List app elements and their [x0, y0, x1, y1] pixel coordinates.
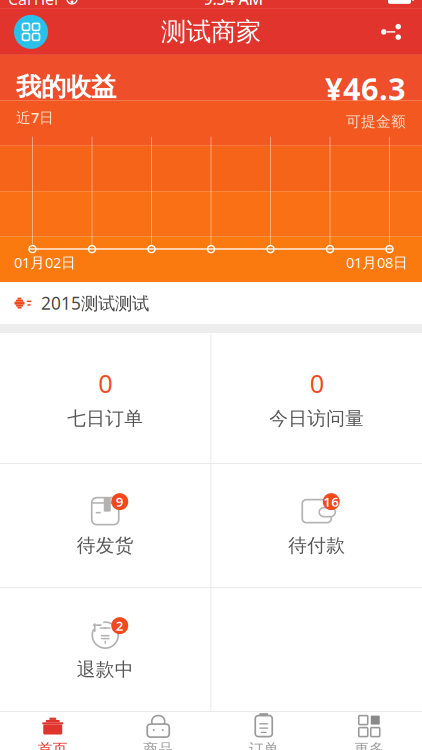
button[interactable]: Share [364, 9, 418, 55]
staticText: 退款中 [77, 658, 134, 681]
staticText: 待付款 [288, 534, 345, 557]
staticText: 0 [98, 366, 112, 400]
button[interactable]: 2 [0, 588, 210, 711]
button[interactable]: 首页 [0, 712, 105, 750]
staticText: 七日订单 [67, 407, 143, 430]
staticText: 0 [310, 366, 324, 400]
staticText: 商品 [143, 740, 173, 750]
button[interactable]: 0 [211, 333, 422, 463]
staticText: 16 [323, 493, 339, 510]
button[interactable]: 更多 [316, 712, 422, 750]
button[interactable]: 2015测试测试 [0, 282, 422, 324]
staticText: 待发货 [77, 534, 134, 557]
staticText: ¥46.3 [325, 68, 406, 109]
staticText: 测试商家 [161, 16, 261, 47]
button[interactable]: Scan code [4, 9, 58, 55]
staticText: 9:34 AM [203, 0, 263, 9]
staticText: 订单 [249, 740, 279, 750]
staticText: 我的收益 [16, 71, 116, 103]
staticText: 01月02日 [14, 253, 76, 272]
staticText: Carrier [8, 0, 61, 9]
button[interactable]: 0 [0, 333, 210, 463]
staticText: 2 [116, 617, 124, 634]
staticText: 01月08日 [346, 253, 408, 272]
staticText: 首页 [38, 740, 68, 750]
button[interactable]: 订单 [211, 712, 316, 750]
staticText: 近7日 [16, 108, 54, 127]
button[interactable]: 16 [211, 464, 422, 587]
staticText: 更多 [354, 740, 384, 750]
button[interactable]: 商品 [105, 712, 211, 750]
staticText: 9 [116, 493, 124, 510]
staticText: 今日访问量 [269, 407, 364, 430]
staticText: 可提金额 [346, 113, 406, 131]
staticText: 2015测试测试 [41, 292, 149, 315]
button[interactable]: 9 [0, 464, 210, 587]
